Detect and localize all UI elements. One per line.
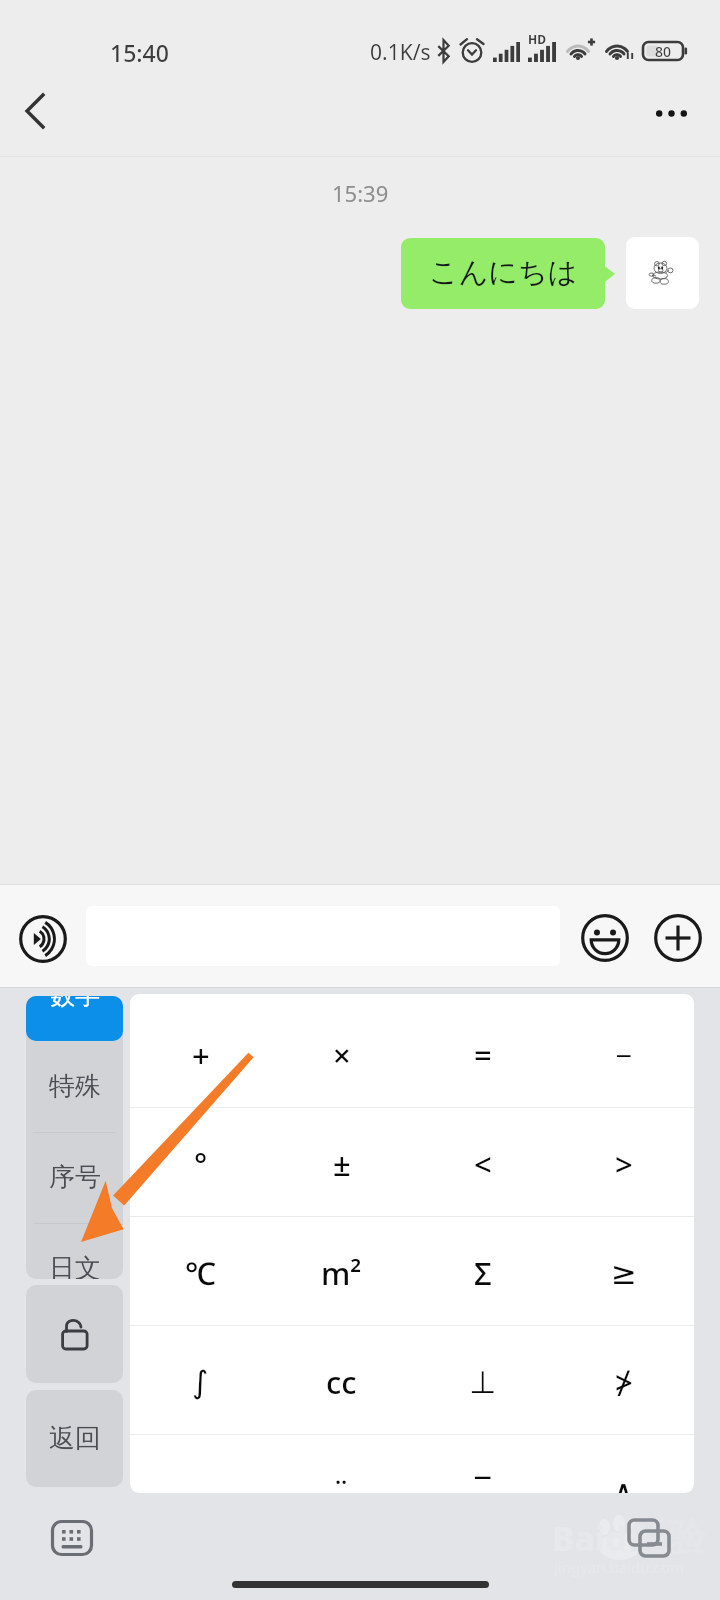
button[interactable]: 返回 [26, 1390, 123, 1487]
staticText: cc [326, 1361, 357, 1403]
button[interactable]: こんにちは [401, 238, 605, 309]
staticText: ≯ [615, 1361, 633, 1403]
button[interactable]: 数字 [26, 996, 123, 1041]
button[interactable]: Lock [26, 1285, 123, 1383]
staticText: － [608, 1035, 639, 1074]
button[interactable]: ± [271, 1107, 412, 1216]
staticText: 80 [655, 42, 672, 60]
staticText: × [333, 1034, 351, 1076]
staticText: + [192, 1034, 210, 1076]
staticText: > [615, 1143, 633, 1185]
button[interactable]: Emoji [577, 910, 633, 966]
staticText: 特殊 [49, 1070, 101, 1103]
staticText: jingyan.baidu.com [554, 1557, 684, 1577]
staticText: 序号 [49, 1161, 101, 1194]
button[interactable]: < [412, 1107, 553, 1216]
button[interactable]: ° [130, 1107, 271, 1216]
staticText: 返回 [49, 1422, 101, 1455]
staticText: < [474, 1143, 492, 1185]
staticText: ¨ [332, 1470, 351, 1493]
staticText: m² [321, 1252, 362, 1294]
button[interactable]: ≯ [553, 1325, 694, 1434]
staticText: ≥ [611, 1255, 637, 1291]
staticText: ⊥ [469, 1364, 497, 1400]
staticText: ℃ [185, 1252, 216, 1294]
staticText: こんにちは [429, 254, 578, 291]
button[interactable]: cc [271, 1325, 412, 1434]
button[interactable]: > [553, 1107, 694, 1216]
staticText: 数字 [50, 996, 100, 1011]
button[interactable]: ¨ [271, 1434, 412, 1493]
button[interactable]: 特殊 [26, 1041, 123, 1132]
button[interactable]: More [650, 910, 706, 966]
staticText: 0.1K/s [370, 38, 431, 67]
staticText: Baidu [552, 1515, 649, 1561]
button[interactable]: 序号 [26, 1132, 123, 1223]
staticText: ° [194, 1143, 208, 1185]
button[interactable]: － [553, 998, 694, 1107]
button[interactable]: ≥ [553, 1216, 694, 1325]
button[interactable]: m² [271, 1216, 412, 1325]
button[interactable]: + [130, 998, 271, 1107]
staticText: Σ [474, 1252, 492, 1294]
button[interactable]: Σ [412, 1216, 553, 1325]
button[interactable]: ∧ [553, 1434, 694, 1493]
staticText: ± [333, 1143, 351, 1185]
staticText: 15:39 [332, 178, 389, 208]
button[interactable]: Voice input [15, 911, 71, 967]
staticText: ∫ [192, 1364, 209, 1400]
staticText: ‾ [475, 1470, 491, 1493]
button[interactable]: Keyboard [39, 1508, 105, 1568]
button[interactable]: = [412, 998, 553, 1107]
button[interactable]: ∫ [130, 1325, 271, 1434]
button[interactable]: Back [4, 78, 66, 144]
staticText: 日文 [49, 1252, 101, 1279]
button[interactable]: ‾ [412, 1434, 553, 1493]
button[interactable]: ℃ [130, 1216, 271, 1325]
button[interactable]: Avatar [626, 237, 699, 309]
button[interactable]: More options [636, 80, 706, 146]
staticText: 15:40 [110, 37, 169, 68]
button[interactable]: × [271, 998, 412, 1107]
staticText: 经验 [630, 1513, 706, 1561]
button[interactable]: ⊥ [412, 1325, 553, 1434]
button[interactable]: 日文 [26, 1223, 123, 1279]
staticText: = [474, 1034, 492, 1076]
staticText: HD [528, 31, 546, 47]
staticText: ∧ [612, 1473, 635, 1493]
